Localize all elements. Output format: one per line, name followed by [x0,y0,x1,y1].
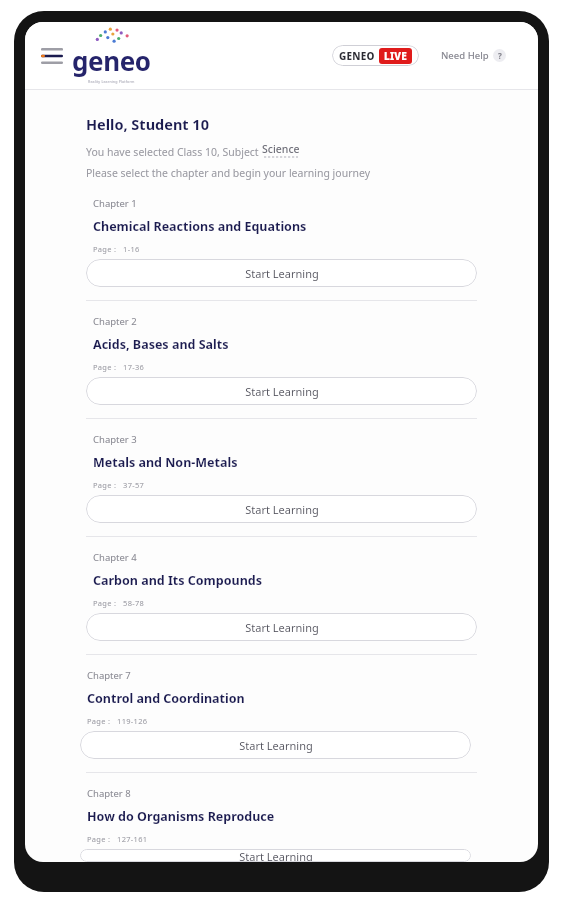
staticText: Science [262,142,300,156]
staticText: Chapter 2 [93,315,137,328]
staticText: Chapter 7 [87,669,131,682]
staticText: Carbon and Its Compounds [93,572,262,589]
staticText: Chemical Reactions and Equations [93,218,307,235]
staticText: Need Help [441,49,489,62]
staticText: Page : 37-57 [93,480,145,490]
button[interactable]: Geneo home [72,28,151,84]
button[interactable]: Start Learning [86,495,477,523]
staticText: Reality Learning Platform [88,79,135,84]
staticText: Page : 58-78 [93,598,145,608]
staticText: Hello, Student 10 [86,114,209,134]
staticText: Please select the chapter and begin your… [86,166,371,180]
staticText: ? [498,50,502,61]
staticText: Start Learning [239,849,313,862]
button[interactable]: GENEO [332,45,419,66]
staticText: Start Learning [245,502,319,517]
staticText: Start Learning [239,738,313,753]
staticText: Metals and Non-Metals [93,454,238,471]
staticText: Chapter 8 [87,787,131,800]
staticText: Start Learning [245,384,319,399]
button[interactable]: Start Learning [86,259,477,287]
button[interactable]: Menu [35,39,69,73]
staticText: Chapter 1 [93,197,137,210]
staticText: Start Learning [245,620,319,635]
staticText: LIVE [384,49,407,63]
button[interactable]: Start Learning [80,731,471,759]
staticText: Chapter 4 [93,551,137,564]
staticText: geneo [72,43,151,78]
staticText: Control and Coordination [87,690,245,707]
button[interactable]: Need Help [437,45,510,66]
button[interactable]: Start Learning [86,613,477,641]
staticText: Acids, Bases and Salts [93,336,229,353]
staticText: Page : 127-161 [87,834,148,844]
button[interactable]: Start Learning [80,849,471,862]
button[interactable]: Start Learning [86,377,477,405]
staticText: Page : 1-16 [93,244,140,254]
staticText: GENEO [339,49,375,63]
staticText: Page : 119-126 [87,716,148,726]
staticText: How do Organisms Reproduce [87,808,275,825]
staticText: Start Learning [245,266,319,281]
staticText: Page : 17-36 [93,362,145,372]
staticText: Chapter 3 [93,433,137,446]
staticText: You have selected Class 10, Subject [86,145,262,159]
